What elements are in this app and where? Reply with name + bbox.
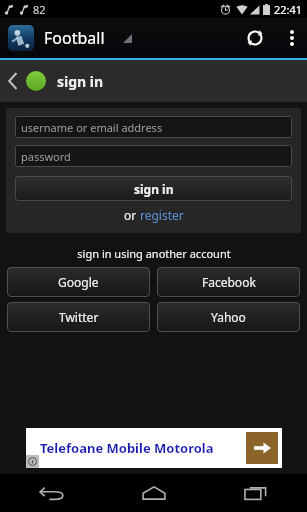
staticText: sign in — [57, 72, 104, 91]
staticText: sign in using another account — [77, 246, 231, 261]
button[interactable]: Ad info — [26, 455, 39, 468]
button[interactable]: Google — [7, 267, 150, 297]
staticText: Football — [44, 27, 105, 49]
button[interactable]: username or email address — [15, 116, 292, 138]
staticText: password — [21, 149, 71, 164]
button[interactable]: sign in — [15, 176, 292, 201]
button[interactable]: Recent apps — [205, 474, 307, 512]
button[interactable]: password — [15, 145, 292, 167]
button[interactable]: Refresh — [233, 18, 277, 58]
staticText: Yahoo — [211, 309, 246, 325]
staticText: 22:41 — [274, 2, 303, 17]
button[interactable]: Yahoo — [157, 302, 300, 332]
button[interactable]: Telefoane Mobile Motorola — [26, 428, 282, 468]
staticText: Facebook — [202, 274, 256, 290]
button[interactable]: register — [140, 207, 184, 223]
button[interactable]: Back — [0, 474, 103, 512]
staticText: register — [140, 207, 184, 223]
staticText: Telefoane Mobile Motorola — [40, 439, 214, 457]
button[interactable]: Twitter — [7, 302, 150, 332]
staticText: Google — [58, 274, 99, 290]
button[interactable]: Facebook — [157, 267, 300, 297]
button[interactable]: sign in — [0, 60, 307, 102]
staticText: sign in — [134, 181, 174, 197]
staticText: or — [124, 207, 140, 223]
staticText: 82 — [33, 2, 46, 17]
button[interactable]: More options — [277, 18, 307, 58]
button[interactable]: Home — [103, 474, 205, 512]
staticText: Twitter — [59, 309, 99, 325]
staticText: username or email address — [21, 120, 163, 135]
button[interactable]: Football — [8, 25, 140, 51]
